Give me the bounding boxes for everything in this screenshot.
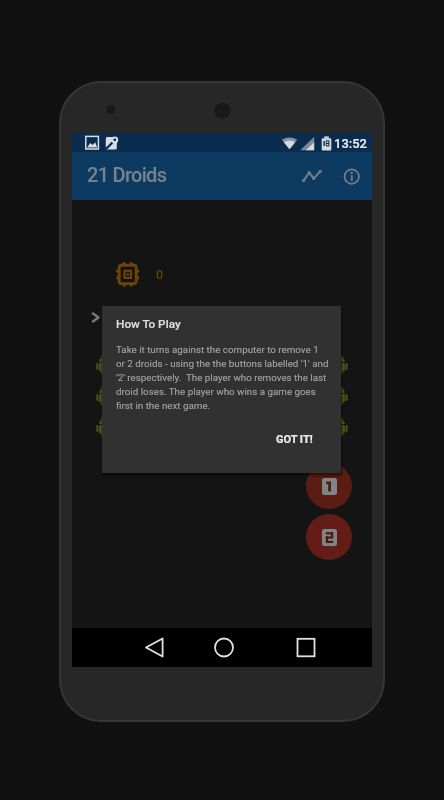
button[interactable] — [210, 638, 238, 658]
button[interactable] — [336, 160, 368, 192]
staticText: 0 — [156, 267, 164, 282]
button[interactable] — [296, 160, 328, 192]
button[interactable] — [306, 463, 352, 509]
staticText: How To Play — [116, 317, 181, 331]
staticText: Take it turns against the computer to re… — [116, 344, 355, 412]
button[interactable] — [306, 514, 352, 560]
staticText: 13:52 — [334, 136, 368, 151]
button[interactable]: GOT IT! — [256, 420, 333, 459]
button[interactable] — [140, 638, 168, 658]
staticText: 21 Droids — [87, 163, 167, 186]
staticText: GOT IT! — [276, 433, 313, 446]
button[interactable] — [292, 638, 320, 658]
